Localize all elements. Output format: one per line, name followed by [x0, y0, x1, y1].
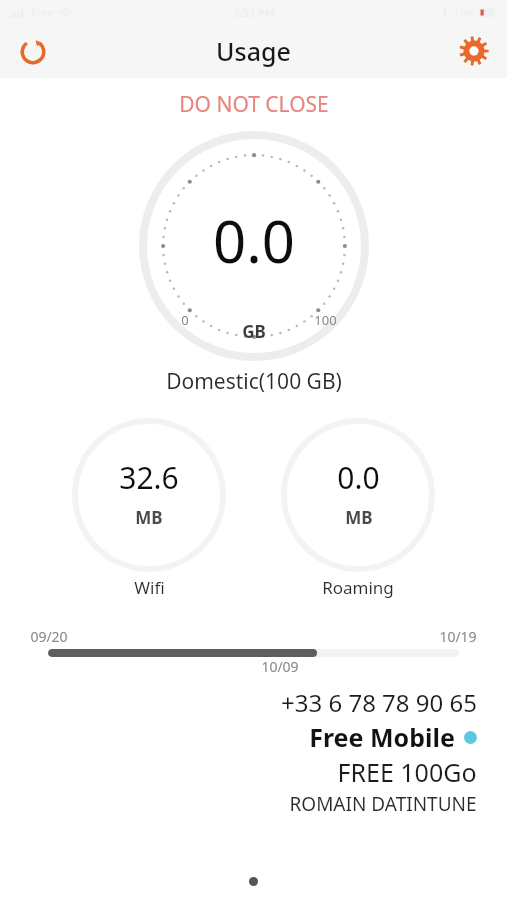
staticText: Free Mobile	[309, 720, 455, 754]
staticText: FREE 100Go	[337, 755, 477, 789]
staticText: 10/09	[261, 657, 299, 676]
staticText: 0.0	[213, 201, 295, 280]
staticText: DO NOT CLOSE	[179, 90, 329, 119]
staticText: Wifi	[134, 576, 165, 599]
staticText: +33 6 78 78 90 65	[281, 686, 477, 719]
staticText: 100	[314, 311, 337, 329]
staticText: 3:53 PM	[233, 5, 275, 20]
staticText: 09/20	[30, 627, 68, 646]
staticText: MB	[135, 506, 163, 529]
staticText: 0	[181, 311, 189, 329]
staticText: Domestic(100 GB)	[166, 367, 342, 396]
button[interactable]: Refresh	[10, 28, 56, 74]
staticText: ROMAIN DATINTUNE	[289, 791, 477, 817]
staticText: 10/19	[439, 627, 477, 646]
staticText: 32.6	[119, 457, 179, 498]
staticText: Roaming	[322, 576, 394, 599]
button[interactable]: Settings	[451, 28, 497, 74]
button[interactable]	[249, 877, 258, 886]
staticText: GB	[242, 320, 266, 343]
staticText: MB	[345, 506, 373, 529]
staticText: Usage	[216, 34, 291, 68]
staticText: 0.0	[337, 457, 380, 498]
